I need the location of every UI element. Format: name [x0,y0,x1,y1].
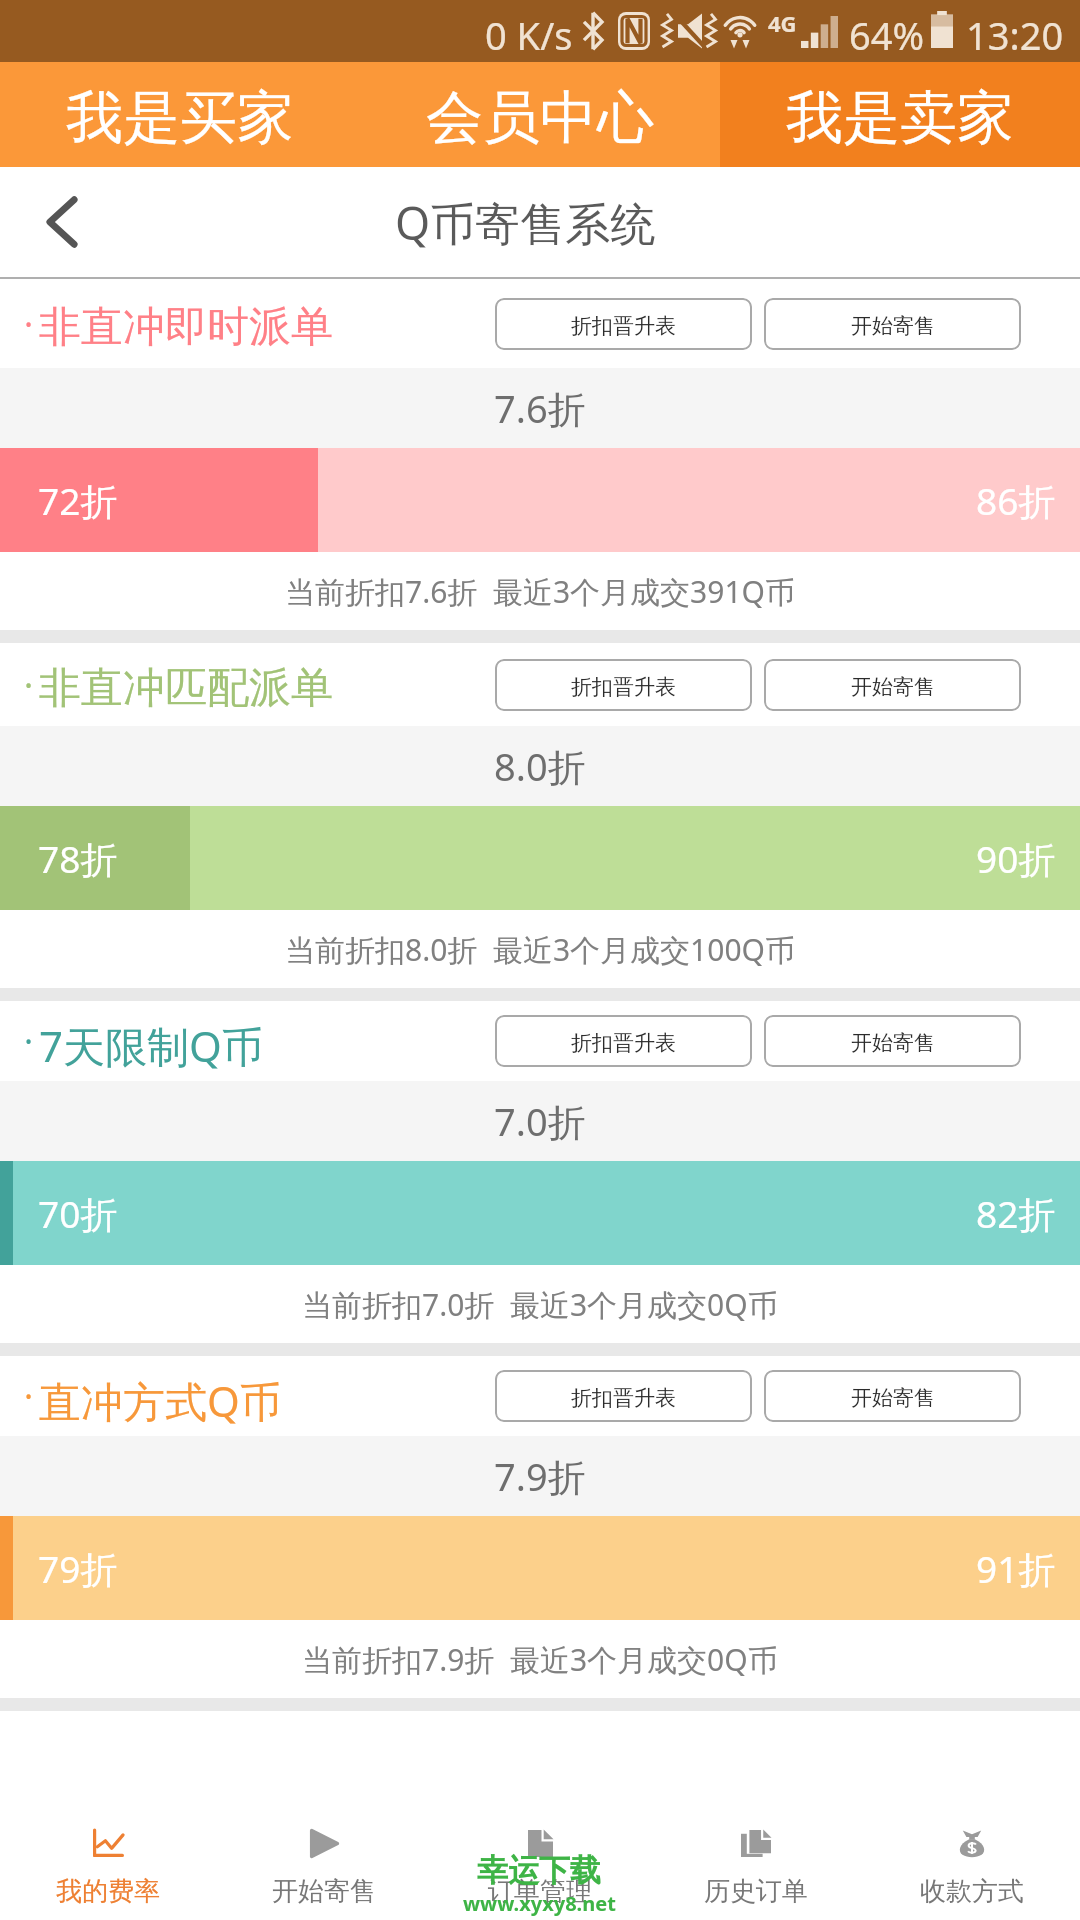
staticText: 70折 [38,1188,118,1239]
staticText: 开始寄售 [272,1875,376,1908]
staticText: 90折 [976,833,1056,884]
button[interactable]: 我是卖家 [720,62,1080,167]
staticText: 折扣晋升表 [571,1385,676,1411]
button[interactable]: 收款方式 [864,1795,1080,1920]
button[interactable]: 折扣晋升表 [495,1370,752,1422]
staticText: 我的费率 [56,1875,160,1908]
staticText: 7.6折 [494,382,586,434]
staticText: 收款方式 [920,1875,1024,1908]
staticText: 非直冲匹配派单 [39,662,333,715]
staticText: 4G [768,8,797,38]
button[interactable]: 历史订单 [648,1795,864,1920]
button[interactable]: 折扣晋升表 [495,659,752,711]
staticText: 折扣晋升表 [571,674,676,700]
staticText: 86折 [976,475,1056,526]
staticText: 8.0折 [494,740,586,792]
button[interactable]: Back [0,167,120,277]
staticText: 78折 [38,833,118,884]
staticText: 开始寄售 [851,313,935,339]
button[interactable]: 我是买家 [0,62,360,167]
staticText: 0 K/s [485,9,573,61]
staticText: 历史订单 [704,1875,808,1908]
staticText: 91折 [976,1543,1056,1594]
staticText: 非直冲即时派单 [39,301,333,354]
staticText: 直冲方式Q币 [39,1372,282,1429]
staticText: 折扣晋升表 [571,1030,676,1056]
button[interactable]: 开始寄售 [764,659,1021,711]
staticText: 折扣晋升表 [571,313,676,339]
staticText: · [24,1018,34,1064]
staticText: Q币寄售系统 [395,192,656,253]
button[interactable]: 开始寄售 [764,1015,1021,1067]
button[interactable]: 折扣晋升表 [495,298,752,350]
button[interactable]: 开始寄售 [216,1795,432,1920]
staticText: 64% [849,9,925,61]
button[interactable]: 开始寄售 [764,298,1021,350]
staticText: 当前折扣7.0折 最近3个月成交0Q币 [302,1284,778,1325]
staticText: 79折 [38,1543,118,1594]
button[interactable]: 订单管理 [432,1795,648,1920]
staticText: 7.0折 [494,1095,586,1147]
staticText: 7.9折 [494,1450,586,1502]
staticText: 当前折扣7.9折 最近3个月成交0Q币 [302,1639,778,1680]
button[interactable]: 开始寄售 [764,1370,1021,1422]
staticText: 72折 [38,475,118,526]
button[interactable]: 会员中心 [360,62,720,167]
button[interactable]: 折扣晋升表 [495,1015,752,1067]
button[interactable]: 我的费率 [0,1795,216,1920]
staticText: 会员中心 [426,82,654,154]
staticText: 我是卖家 [786,82,1014,154]
staticText: 幸运下载 [477,1851,601,1890]
staticText: 7天限制Q币 [39,1017,264,1074]
staticText: · [24,301,34,347]
staticText: 开始寄售 [851,1030,935,1056]
staticText: 当前折扣8.0折 最近3个月成交100Q币 [285,929,796,970]
staticText: 订单管理 [488,1875,592,1908]
staticText: 开始寄售 [851,674,935,700]
staticText: 开始寄售 [851,1385,935,1411]
staticText: 82折 [976,1188,1056,1239]
staticText: 13:20 [966,9,1064,61]
staticText: 我是买家 [66,82,294,154]
staticText: · [24,662,34,708]
staticText: www.xyxy8.net [463,1890,616,1917]
staticText: · [24,1373,34,1419]
staticText: 当前折扣7.6折 最近3个月成交391Q币 [285,571,796,612]
